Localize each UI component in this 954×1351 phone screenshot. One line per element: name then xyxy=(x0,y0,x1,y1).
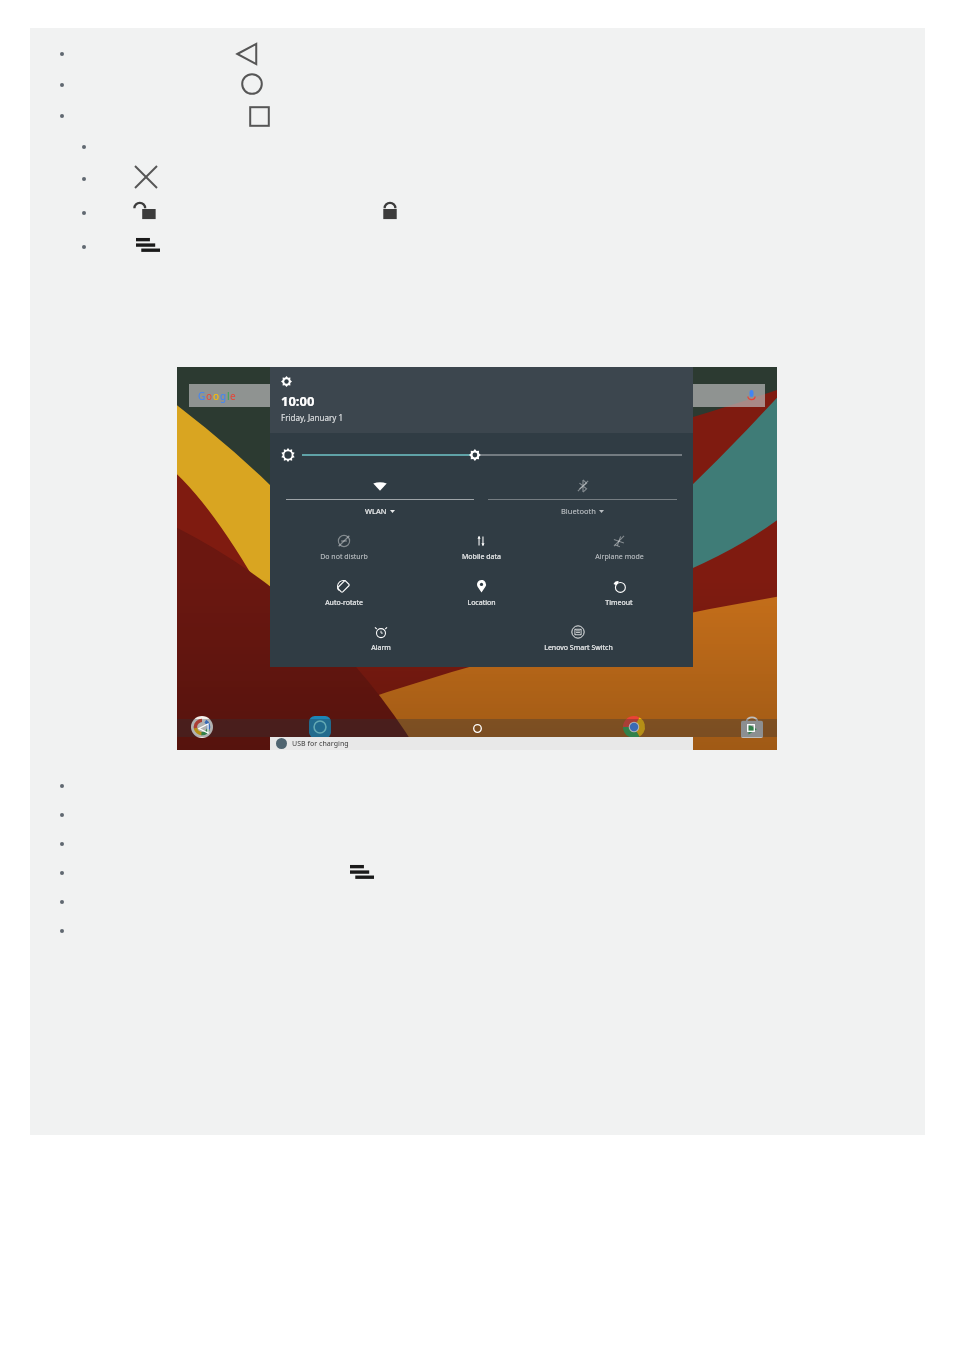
button[interactable]: Back xyxy=(199,724,208,733)
staticText: Do not disturb xyxy=(320,552,368,562)
staticText: e xyxy=(230,389,236,403)
staticText: G xyxy=(198,389,206,403)
button[interactable]: Bluetooth xyxy=(488,478,677,516)
staticText: USB for charging xyxy=(292,739,349,749)
staticText: Timeout xyxy=(605,598,633,608)
button[interactable]: Brightness xyxy=(281,446,682,464)
button[interactable]: Recents xyxy=(747,724,755,732)
button[interactable] xyxy=(623,716,645,738)
staticText: o xyxy=(206,389,213,403)
staticText: 10:00 xyxy=(281,392,315,410)
button[interactable]: Auto-rotate xyxy=(275,579,412,608)
staticText: Location xyxy=(467,598,496,608)
button[interactable]: Settings xyxy=(281,376,292,387)
staticText: WLAN xyxy=(365,506,387,516)
button[interactable]: Lenovo Smart Switch xyxy=(479,625,677,653)
staticText: Alarm xyxy=(371,643,391,653)
button[interactable]: Airplane mode xyxy=(550,534,688,562)
button[interactable]: Location xyxy=(412,579,550,608)
button[interactable]: Alarm xyxy=(282,625,479,653)
staticText: Auto-rotate xyxy=(325,598,363,608)
staticText: g xyxy=(220,389,227,403)
button[interactable]: G xyxy=(189,384,765,407)
button[interactable]: WLAN xyxy=(286,478,474,516)
staticText: o xyxy=(213,389,220,403)
staticText: Friday, January 1 xyxy=(281,412,343,423)
button[interactable]: Do not disturb xyxy=(275,534,412,562)
staticText: l xyxy=(227,389,230,403)
staticText: Lenovo Smart Switch xyxy=(544,643,613,653)
staticText: Bluetooth xyxy=(561,506,596,516)
button[interactable]: USB for charging xyxy=(270,737,693,750)
staticText: Airplane mode xyxy=(595,552,644,562)
button[interactable] xyxy=(309,716,331,738)
button[interactable]: Home xyxy=(473,724,482,733)
staticText: Mobile data xyxy=(462,552,501,562)
button[interactable] xyxy=(191,716,213,738)
button[interactable]: Timeout xyxy=(550,579,688,608)
button[interactable]: Mobile data xyxy=(412,534,550,562)
button[interactable] xyxy=(741,716,763,738)
